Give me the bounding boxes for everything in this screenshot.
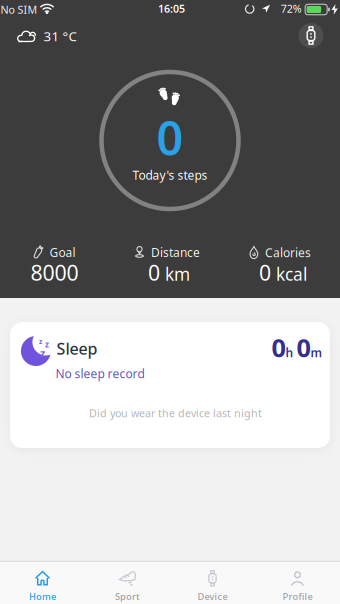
staticText: Sleep [56, 338, 97, 359]
button[interactable]: Sport [85, 567, 170, 604]
staticText: No SIM [0, 2, 37, 17]
staticText: 8000 [30, 258, 78, 287]
button[interactable]: Device [170, 567, 255, 604]
staticText: Distance [151, 244, 200, 260]
staticText: Profile [282, 590, 312, 603]
staticText: 72% [281, 2, 302, 16]
staticText: 0 km [148, 258, 190, 287]
staticText: Goal [49, 244, 75, 260]
staticText: Home [29, 590, 56, 603]
staticText: 31 °C [43, 27, 76, 45]
button[interactable]: Profile [255, 567, 340, 604]
staticText: Sport [115, 590, 140, 603]
staticText: Calories [265, 245, 311, 260]
staticText: No sleep record [55, 365, 144, 381]
staticText: 0 kcal [259, 258, 307, 287]
staticText: Device [197, 590, 227, 603]
staticText: z [40, 346, 45, 360]
button[interactable]: z [10, 322, 330, 448]
staticText: 0h 0m [271, 330, 322, 364]
staticText: Did you wear the device last night [89, 406, 262, 420]
staticText: z [39, 337, 42, 346]
staticText: 0 [156, 106, 183, 168]
staticText: z [45, 339, 49, 350]
staticText: Today's steps [132, 167, 207, 183]
button[interactable]: Home [0, 567, 85, 604]
button[interactable]: Device [296, 20, 326, 50]
staticText: 16:05 [158, 1, 185, 16]
